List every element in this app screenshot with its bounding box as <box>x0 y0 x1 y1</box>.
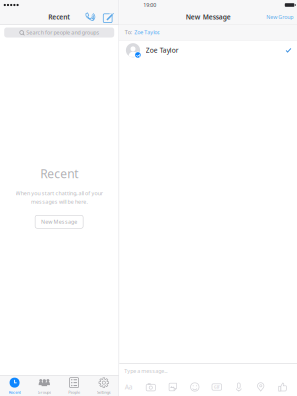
button[interactable]: Text formatting <box>118 380 140 394</box>
button[interactable]: New message <box>99 10 117 24</box>
staticText: messages will be here. <box>31 198 87 205</box>
staticText: People <box>68 389 80 395</box>
staticText: To: <box>125 29 132 36</box>
staticText: 19:00 <box>143 1 156 9</box>
button[interactable]: Like <box>272 380 294 394</box>
staticText: Settings <box>97 389 111 395</box>
staticText: New Message <box>186 13 231 21</box>
staticText: Groups <box>37 389 51 395</box>
button[interactable]: Stickers <box>162 380 184 394</box>
button[interactable]: Voice message <box>228 380 250 394</box>
button[interactable]: Emoji <box>184 380 206 394</box>
button[interactable]: Start a call <box>81 10 99 24</box>
staticText: Type a message... <box>124 367 167 375</box>
button[interactable]: Zoe Taylor <box>119 40 297 60</box>
staticText: Recent <box>9 389 20 395</box>
staticText: Zoe Taylor, <box>134 29 159 36</box>
button[interactable]: New Message <box>35 215 83 228</box>
staticText: Recent <box>40 166 78 182</box>
staticText: New Group <box>266 13 293 21</box>
staticText: When you start chatting, all of your <box>16 190 103 197</box>
staticText: Zoe Taylor <box>146 46 179 55</box>
button[interactable]: New Group <box>266 13 297 21</box>
staticText: GIF <box>214 384 220 390</box>
staticText: Search for people and groups <box>26 29 99 36</box>
button[interactable]: Groups <box>29 376 59 396</box>
button[interactable]: Search for people and groups <box>4 27 114 37</box>
staticText: New Message <box>41 218 77 225</box>
staticText: Aa <box>125 383 133 391</box>
staticText: Recent <box>48 13 70 21</box>
button[interactable]: Location <box>250 380 272 394</box>
button[interactable]: Camera <box>140 380 162 394</box>
button[interactable]: People <box>59 376 89 396</box>
button[interactable]: GIF <box>206 380 228 394</box>
button[interactable]: Settings <box>89 376 119 396</box>
button[interactable]: Recent <box>0 376 29 396</box>
